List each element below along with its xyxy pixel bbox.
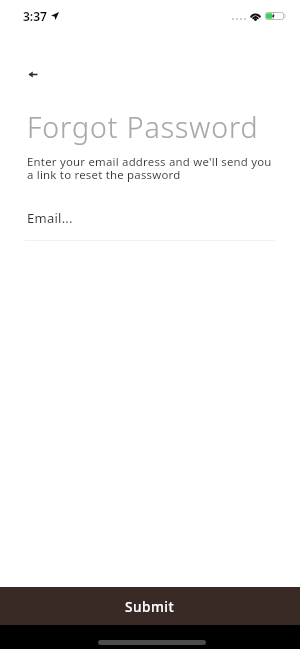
staticText: Forgot Password <box>27 108 259 147</box>
staticText: Submit <box>125 597 175 616</box>
staticText: Enter your email address and we'll send … <box>27 156 275 182</box>
staticText: Email... <box>27 209 73 227</box>
button[interactable]: Back <box>15 56 51 92</box>
button[interactable]: Submit <box>0 587 300 625</box>
button[interactable]: Email... <box>25 203 275 241</box>
staticText: 3:37 <box>23 8 47 24</box>
